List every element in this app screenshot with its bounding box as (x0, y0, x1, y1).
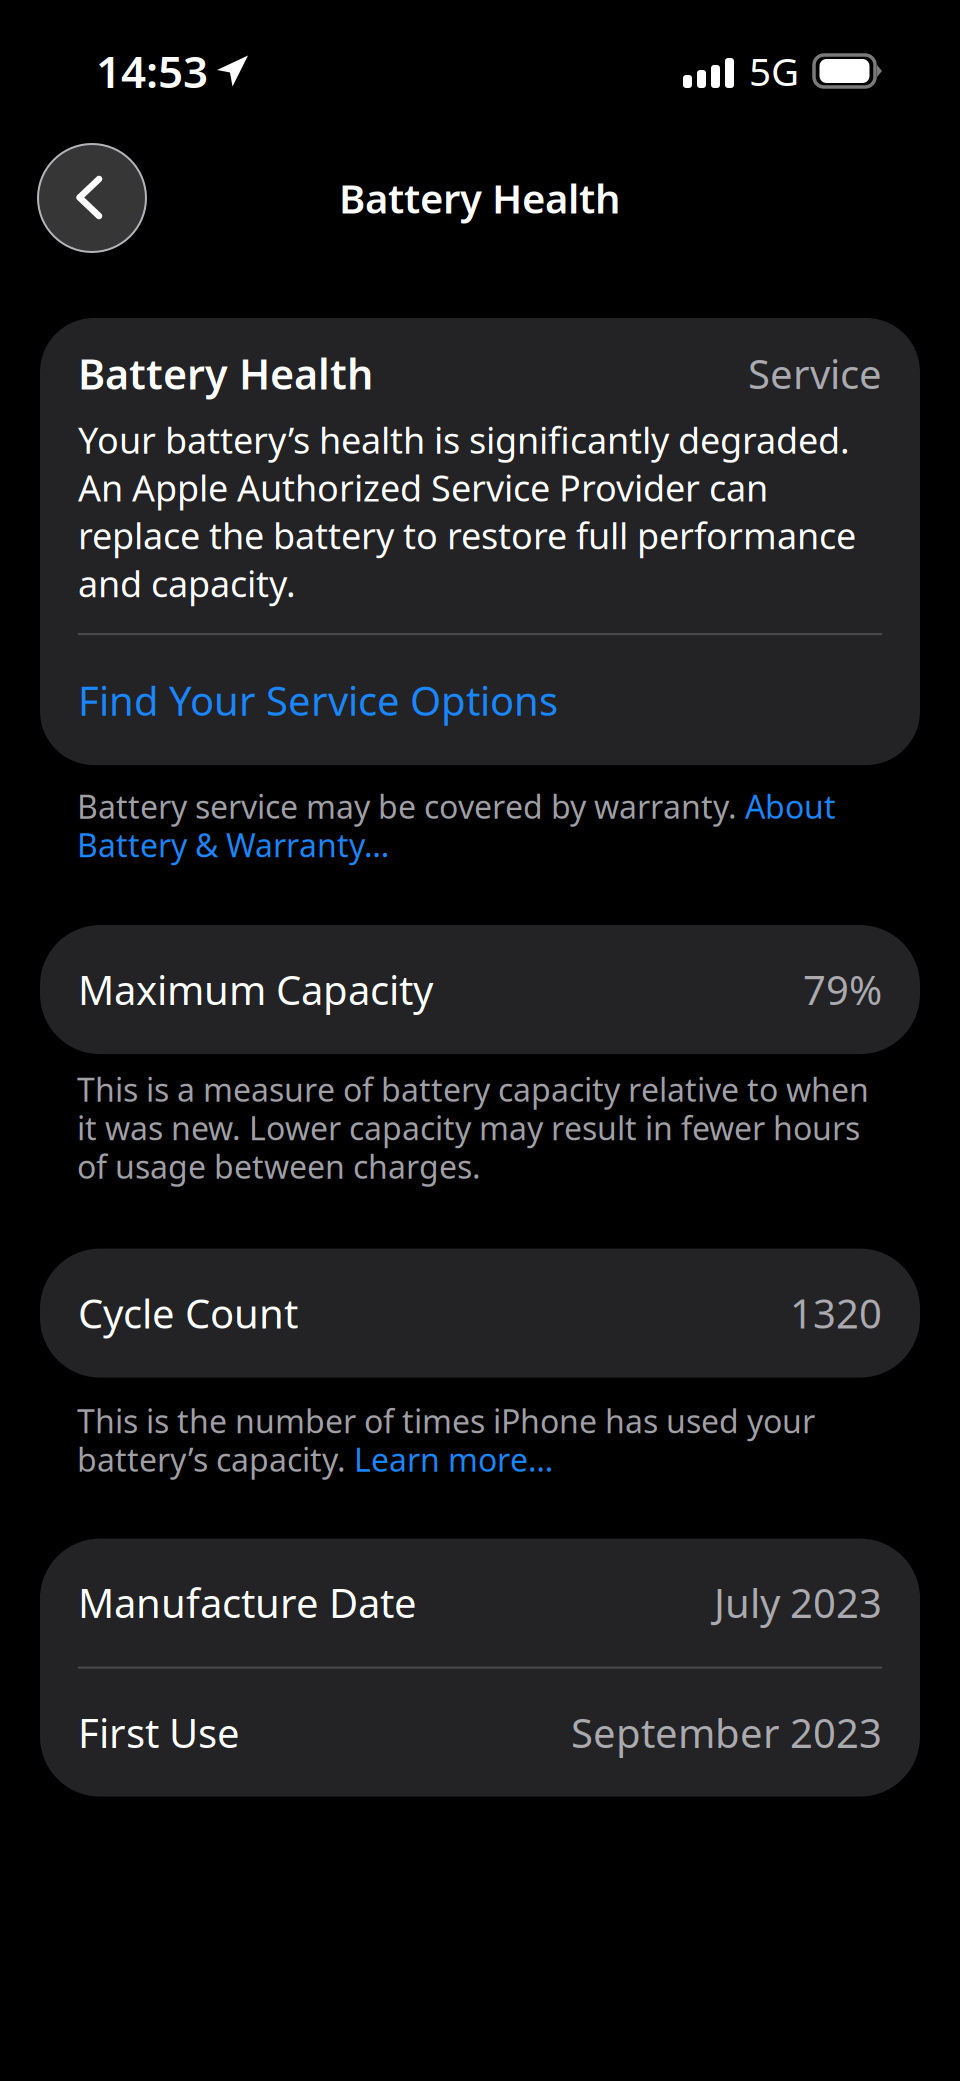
staticText: First Use (78, 1706, 240, 1759)
staticText: Maximum Capacity (78, 963, 433, 1016)
staticText: Your battery’s health is significantly d… (78, 416, 856, 607)
button[interactable]: This is the number of times iPhone has u… (77, 1378, 883, 1481)
staticText: Battery service may be covered by warran… (77, 785, 836, 866)
button[interactable]: Back (38, 144, 146, 252)
button[interactable]: Find Your Service Options (78, 635, 882, 765)
staticText: Find Your Service Options (78, 674, 558, 727)
staticText: This is a measure of battery capacity re… (77, 1068, 869, 1188)
staticText: 1320 (790, 1286, 882, 1340)
staticText: 14:53 (96, 42, 208, 100)
staticText: Manufacture Date (78, 1576, 417, 1629)
staticText: Cycle Count (78, 1286, 298, 1340)
staticText: Service (748, 347, 882, 400)
staticText: This is the number of times iPhone has u… (77, 1400, 815, 1481)
staticText: 5G (749, 45, 799, 97)
staticText: Battery Health (78, 346, 373, 401)
staticText: September 2023 (571, 1706, 882, 1759)
button[interactable]: Battery service may be covered by warran… (77, 765, 883, 866)
staticText: July 2023 (714, 1576, 882, 1629)
staticText: Battery Health (339, 171, 621, 224)
staticText: 79% (803, 963, 882, 1016)
